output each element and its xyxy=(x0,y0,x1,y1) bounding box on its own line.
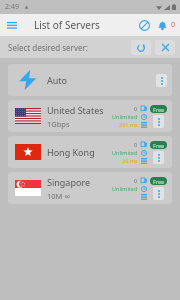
staticText: 10M ∞ xyxy=(47,191,71,201)
button[interactable]: Open navigation menu xyxy=(4,17,20,33)
staticText: Unlimited xyxy=(112,185,138,192)
staticText: Free xyxy=(153,142,165,149)
button[interactable]: Block ads xyxy=(135,16,153,34)
button[interactable]: Notifications xyxy=(153,16,171,34)
button[interactable]: Auto xyxy=(8,64,172,96)
staticText: 1Gbps xyxy=(47,119,70,129)
button[interactable]: Refresh server list xyxy=(131,40,151,55)
button[interactable]: Hong Kong xyxy=(8,136,172,168)
staticText: 0 xyxy=(134,177,138,184)
button[interactable]: United States xyxy=(8,100,172,132)
staticText: Free xyxy=(153,178,165,185)
staticText: 0 xyxy=(134,105,138,112)
button[interactable]: More options for Auto xyxy=(156,74,167,87)
staticText: 2:49 xyxy=(5,2,19,12)
button[interactable]: More options for United States xyxy=(153,115,164,128)
staticText: United States xyxy=(47,104,104,116)
button[interactable]: Clear xyxy=(155,40,175,55)
staticText: Unlimited xyxy=(112,149,138,156)
staticText: List of Servers xyxy=(34,18,100,32)
button[interactable]: Singapore xyxy=(8,172,172,204)
button[interactable]: More options for Singapore xyxy=(153,187,164,200)
staticText: Select desired server: xyxy=(8,42,88,53)
staticText: Hong Kong xyxy=(47,146,95,158)
staticText: Singapore xyxy=(47,176,91,188)
staticText: 201 ms xyxy=(119,121,138,128)
staticText: Unlimited xyxy=(112,113,138,120)
staticText: Auto xyxy=(47,74,68,86)
staticText: 20 ms xyxy=(122,157,138,164)
staticText: 0 xyxy=(171,20,176,30)
staticText: Free xyxy=(153,106,165,113)
button[interactable]: More options for Hong Kong xyxy=(153,151,164,164)
staticText: 0 xyxy=(134,141,138,148)
